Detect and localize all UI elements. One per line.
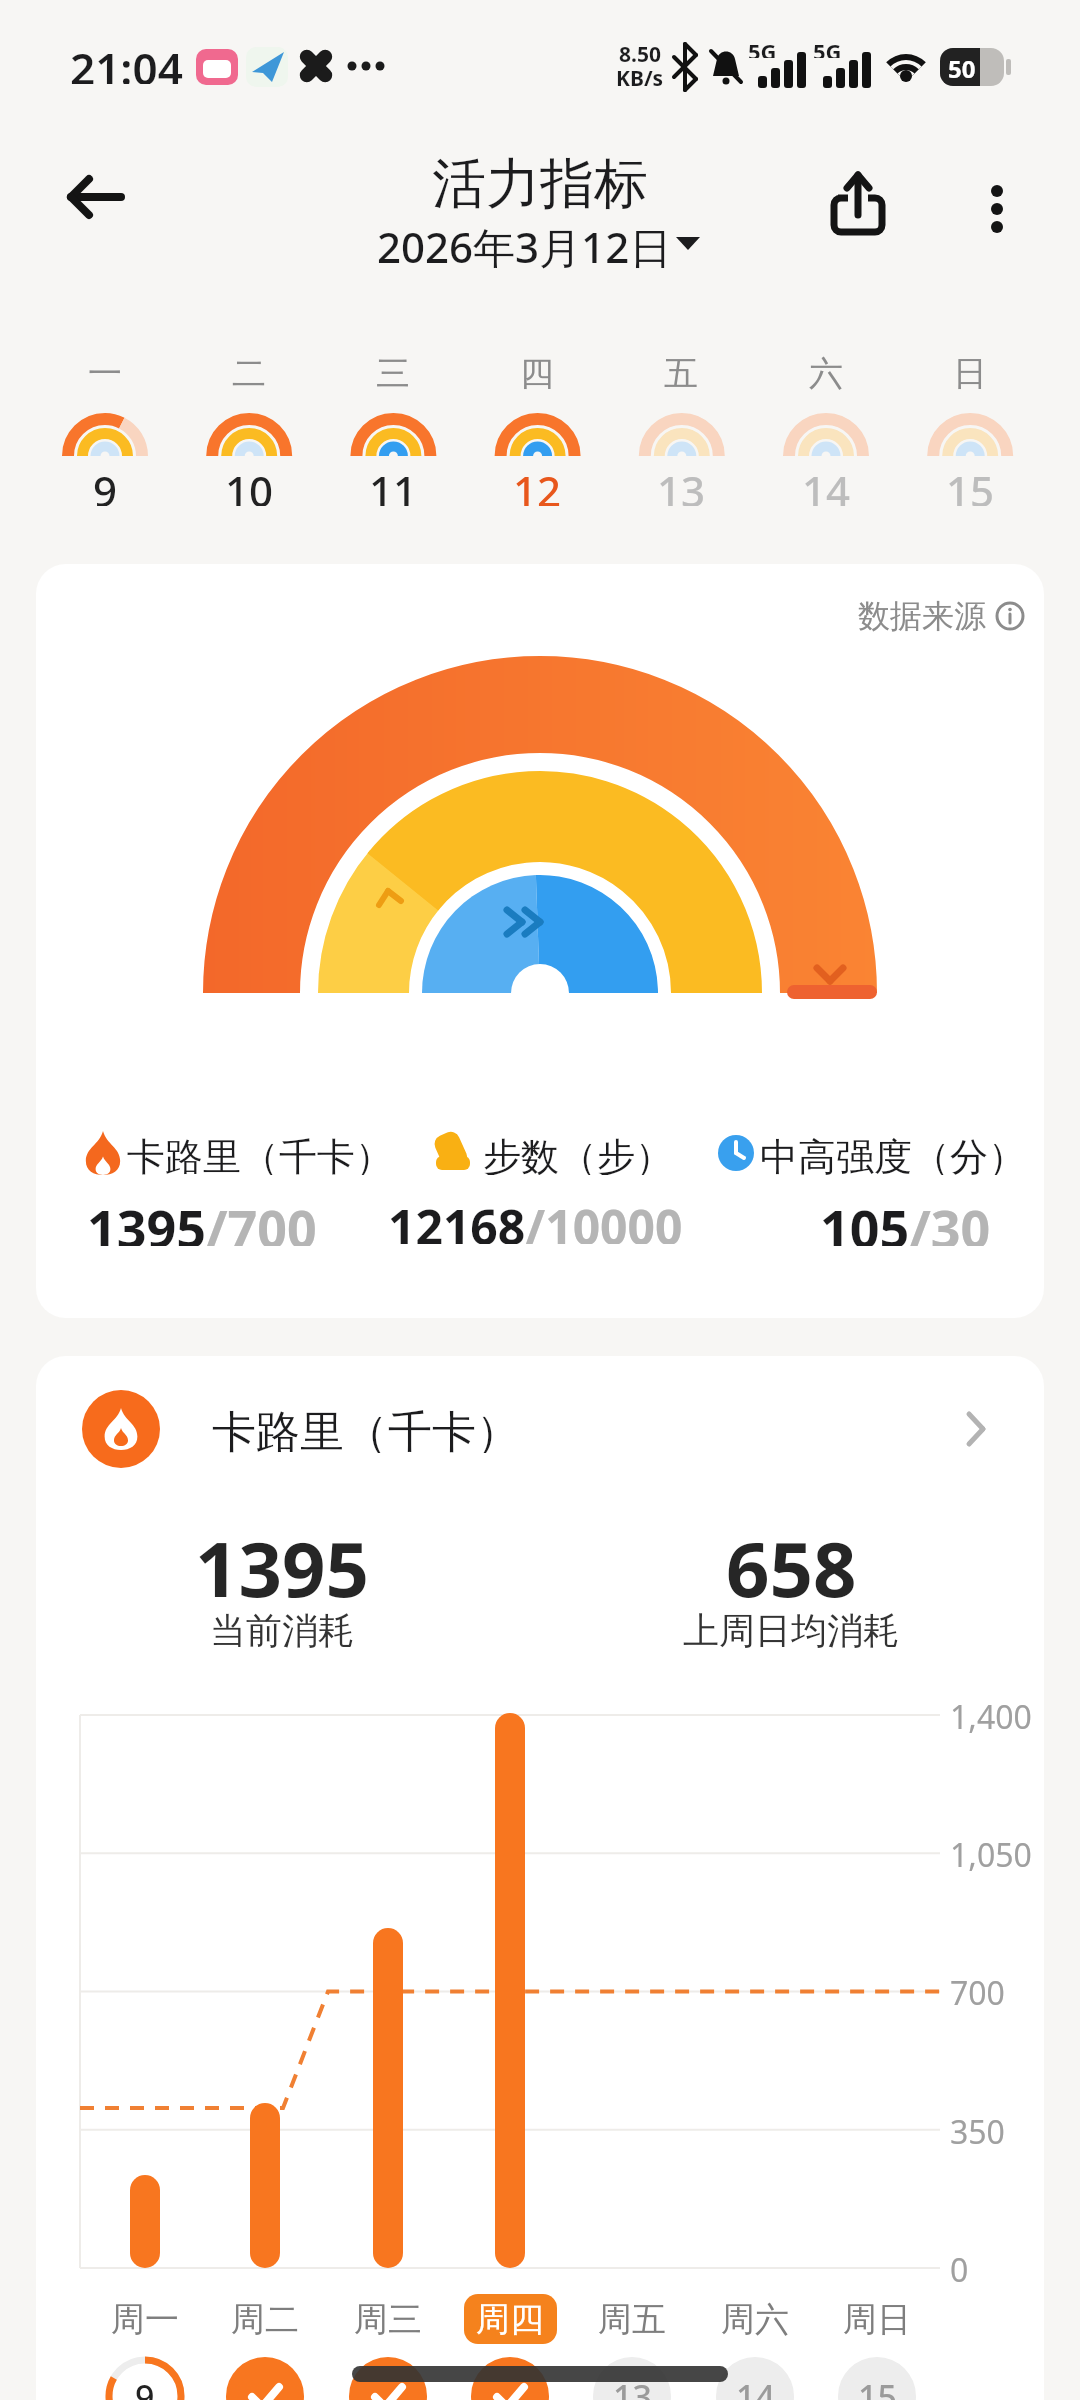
button[interactable]: [478, 350, 598, 510]
button[interactable]: [622, 350, 742, 510]
button[interactable]: [333, 350, 453, 510]
button[interactable]: [189, 350, 309, 510]
button[interactable]: 周六: [700, 2296, 810, 2342]
staticText: 六: [809, 352, 843, 392]
button[interactable]: [826, 165, 896, 245]
button[interactable]: 周五: [577, 2296, 687, 2342]
staticText: 13: [657, 462, 706, 506]
staticText: 卡路里（千卡）: [212, 1405, 520, 1453]
staticText: 11: [369, 462, 418, 506]
staticText: 步数（步）: [483, 1133, 673, 1175]
staticText: 周六: [721, 2298, 789, 2341]
button[interactable]: 卡路里（千卡）: [36, 1356, 1044, 2400]
staticText: 15: [946, 462, 995, 506]
staticText: 12: [513, 462, 562, 506]
button[interactable]: 2026年3月12日: [324, 218, 724, 270]
staticText: 13: [613, 2374, 652, 2400]
staticText: 卡路里（千卡）: [127, 1133, 387, 1175]
staticText: 14: [802, 462, 851, 506]
staticText: 5G: [748, 36, 777, 58]
button[interactable]: [910, 350, 1030, 510]
staticText: 12168/10000: [388, 1194, 683, 1244]
button[interactable]: 周二: [210, 2296, 320, 2342]
staticText: 14: [736, 2374, 775, 2400]
staticText: 二: [232, 352, 266, 392]
staticText: 1,400: [950, 1695, 1032, 1735]
staticText: 2026年3月12日: [377, 218, 672, 270]
button[interactable]: 周三: [333, 2296, 443, 2342]
staticText: 中高强度（分）: [760, 1133, 1020, 1175]
button[interactable]: [965, 170, 1029, 250]
staticText: 1395/700: [87, 1192, 317, 1246]
button[interactable]: [55, 160, 145, 240]
button[interactable]: [766, 350, 886, 510]
button[interactable]: [45, 350, 165, 510]
staticText: 一: [88, 352, 122, 392]
staticText: 5G: [813, 36, 842, 58]
staticText: 上周日均消耗: [683, 1608, 899, 1652]
staticText: 五: [664, 352, 698, 392]
staticText: 50: [948, 52, 976, 85]
staticText: 700: [950, 1971, 1005, 2011]
staticText: 周四: [476, 2298, 544, 2341]
staticText: 数据来源: [858, 596, 986, 636]
staticText: 周五: [598, 2298, 666, 2341]
staticText: 9: [93, 462, 118, 506]
button[interactable]: 周四: [455, 2296, 565, 2342]
staticText: 15: [858, 2374, 897, 2400]
staticText: 658: [726, 1516, 857, 1604]
staticText: 周一: [111, 2298, 179, 2341]
staticText: 350: [950, 2110, 1005, 2150]
staticText: 10: [225, 462, 274, 506]
staticText: 1395: [195, 1516, 369, 1604]
staticText: 三: [376, 352, 410, 392]
staticText: 周二: [231, 2298, 299, 2341]
button[interactable]: 周日: [822, 2296, 932, 2342]
staticText: 9: [135, 2374, 155, 2400]
staticText: 周日: [843, 2298, 911, 2341]
button[interactable]: 周一: [90, 2296, 200, 2342]
button[interactable]: 数据来源: [36, 564, 1044, 1318]
staticText: 21:04: [70, 38, 183, 84]
staticText: KB/s: [616, 64, 664, 90]
staticText: 四: [520, 352, 554, 392]
staticText: 当前消耗: [210, 1608, 354, 1652]
staticText: 活力指标: [432, 150, 648, 212]
staticText: 8.50: [619, 40, 661, 66]
staticText: 0: [950, 2248, 969, 2288]
staticText: 日: [953, 352, 987, 392]
staticText: 周三: [354, 2298, 422, 2341]
staticText: 1,050: [950, 1833, 1032, 1873]
staticText: 105/30: [820, 1192, 991, 1246]
